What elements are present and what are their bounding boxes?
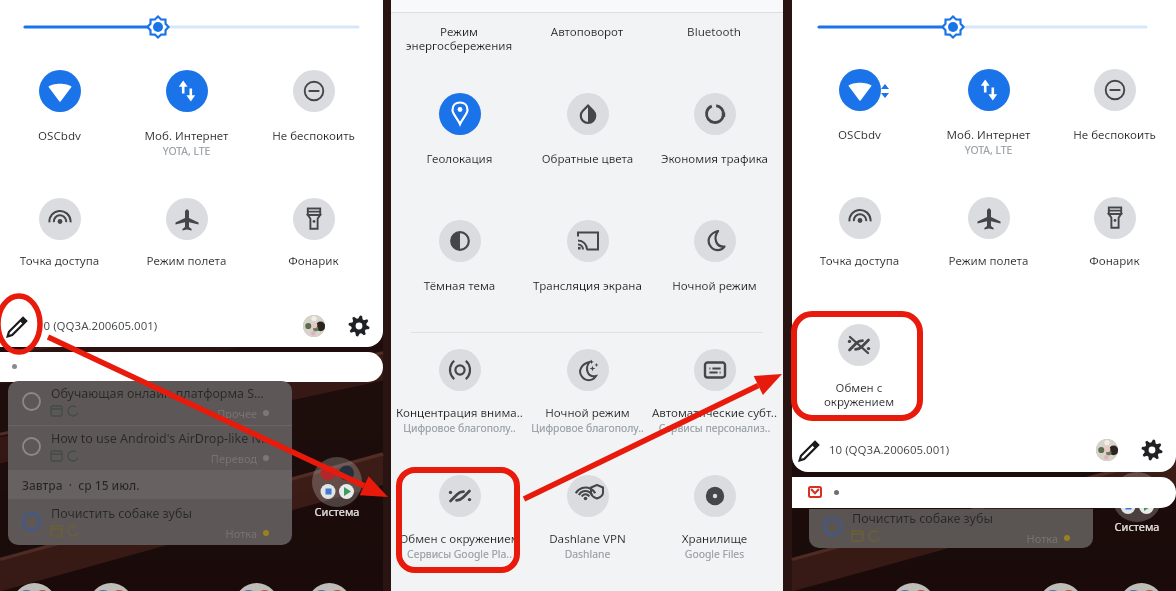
staticText: How to use Android's AirDrop-like N… xyxy=(51,430,287,447)
button[interactable]: System folder xyxy=(1112,472,1162,522)
staticText: OSCbdv xyxy=(0,128,123,144)
button[interactable] xyxy=(796,64,923,142)
button[interactable]: Settings xyxy=(348,315,370,337)
button[interactable] xyxy=(396,215,523,293)
staticText: Обмен с окружением xyxy=(396,531,523,547)
staticText: 10 (QQ3A.200605.001) xyxy=(829,442,950,458)
button[interactable] xyxy=(925,192,1052,270)
button[interactable] xyxy=(396,344,523,422)
button[interactable] xyxy=(651,344,778,422)
staticText: Завтра · ср 15 июл. xyxy=(22,477,140,493)
staticText: Ночной режим xyxy=(651,278,778,294)
button[interactable] xyxy=(396,470,523,548)
staticText: Моб. Интернет xyxy=(123,128,250,144)
staticText: Сервисы Google Pla.. xyxy=(396,547,523,561)
button[interactable] xyxy=(651,215,778,293)
staticText: YOTA, LTE xyxy=(123,144,250,158)
button[interactable]: Notification xyxy=(0,352,383,382)
button[interactable]: How to use Android's AirDrop-like N… xyxy=(8,425,292,470)
button[interactable]: Account xyxy=(1096,439,1118,461)
button[interactable]: Edit tiles xyxy=(6,315,29,338)
button[interactable] xyxy=(396,88,523,166)
button[interactable] xyxy=(250,193,377,271)
button[interactable] xyxy=(651,88,778,166)
staticText: Точка доступа xyxy=(0,253,123,269)
staticText: Экономия трафика xyxy=(651,151,778,167)
staticText: Обмен с окружением xyxy=(804,380,914,409)
staticText: OSCbdv xyxy=(796,127,923,143)
staticText: Dashlane VPN xyxy=(524,531,651,547)
button[interactable] xyxy=(123,193,250,271)
staticText: Фонарик xyxy=(250,253,377,269)
staticText: Режим полета xyxy=(123,253,250,269)
button[interactable] xyxy=(0,193,123,271)
staticText: Цифровое благополу.. xyxy=(396,421,523,435)
staticText: Режим полета xyxy=(925,253,1052,269)
staticText: Автоматические субт.. xyxy=(651,405,778,421)
button[interactable]: System folder xyxy=(312,457,362,507)
button[interactable]: Account xyxy=(303,315,325,337)
button[interactable] xyxy=(1051,192,1176,270)
staticText: Режим энергосбережения xyxy=(396,24,522,53)
staticText: YOTA, LTE xyxy=(925,143,1052,157)
button[interactable] xyxy=(925,64,1052,142)
button[interactable] xyxy=(524,88,651,166)
staticText: Ночной режим xyxy=(524,405,651,421)
staticText: Цифровое благополу.. xyxy=(524,421,651,435)
staticText: Bluetooth xyxy=(651,24,777,40)
staticText: Трансляция экрана xyxy=(524,278,651,294)
button[interactable] xyxy=(804,319,914,397)
staticText: Почистить собаке зубы xyxy=(852,510,1088,527)
staticText: 10 (QQ3A.200605.001) xyxy=(37,318,158,334)
staticText: Нотка xyxy=(177,526,257,541)
staticText: Почистить собаке зубы xyxy=(51,505,287,522)
button[interactable]: Почистить собаке зубы xyxy=(809,509,1093,544)
staticText: Не беспокоить xyxy=(250,128,377,144)
button[interactable] xyxy=(123,65,250,143)
staticText: Обучающая онлайн-платформа S… xyxy=(51,385,287,402)
staticText: Перевод xyxy=(177,451,257,466)
button[interactable] xyxy=(0,65,123,143)
staticText: Google Files xyxy=(651,547,778,561)
staticText: Фонарик xyxy=(1051,253,1176,269)
button[interactable] xyxy=(524,470,651,548)
button[interactable] xyxy=(651,470,778,548)
staticText: Обратные цвета xyxy=(524,151,651,167)
button[interactable]: Settings xyxy=(1141,439,1163,461)
staticText: Тёмная тема xyxy=(396,278,523,294)
staticText: Прочее xyxy=(177,406,257,421)
staticText: Точка доступа xyxy=(796,253,923,269)
staticText: Автоповорот xyxy=(524,24,650,40)
staticText: Концентрация внима.. xyxy=(396,405,523,421)
staticText: Хранилище xyxy=(651,531,778,547)
button[interactable]: Почистить собаке зубы xyxy=(8,500,292,545)
button[interactable] xyxy=(524,215,651,293)
staticText: Система xyxy=(297,504,377,519)
staticText: Не беспокоить xyxy=(1051,127,1176,143)
button[interactable] xyxy=(524,344,651,422)
staticText: Сервисы персонализ.. xyxy=(651,421,778,435)
button[interactable] xyxy=(250,65,377,143)
staticText: Dashlane xyxy=(524,547,651,561)
button[interactable]: Edit tiles xyxy=(798,439,821,462)
button[interactable]: Обучающая онлайн-платформа S… xyxy=(8,381,292,425)
button[interactable]: Gmail notification xyxy=(792,477,1176,508)
staticText: Система xyxy=(1097,519,1176,534)
staticText: Нотка xyxy=(978,531,1058,546)
staticText: Моб. Интернет xyxy=(925,127,1052,143)
staticText: Геолокация xyxy=(396,151,523,167)
button[interactable] xyxy=(796,192,923,270)
button[interactable] xyxy=(1051,64,1176,142)
